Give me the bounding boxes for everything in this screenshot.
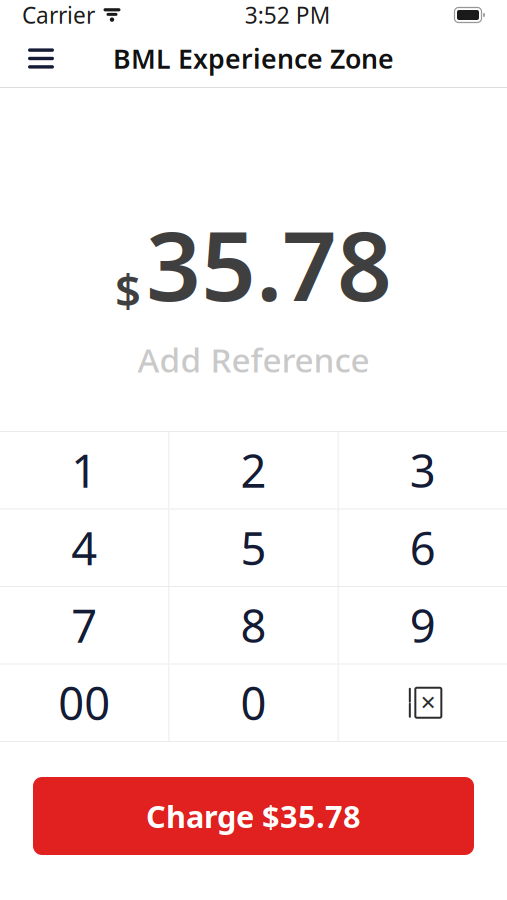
- staticText: 3: [410, 440, 436, 500]
- button[interactable]: 4: [0, 509, 168, 586]
- staticText: $: [115, 259, 141, 319]
- staticText: 8: [240, 595, 266, 655]
- button[interactable]: 7: [0, 587, 168, 663]
- button[interactable]: 8: [169, 587, 338, 663]
- staticText: 6: [410, 518, 436, 578]
- staticText: 35.78: [146, 200, 392, 327]
- staticText: 0: [240, 673, 266, 733]
- button[interactable]: Add Reference: [121, 333, 385, 386]
- staticText: 1: [71, 440, 97, 500]
- button[interactable]: 3: [339, 432, 507, 508]
- staticText: ✕: [420, 691, 437, 714]
- button[interactable]: 00: [0, 664, 168, 741]
- staticText: 9: [410, 595, 436, 655]
- button[interactable]: Delete: [339, 664, 507, 741]
- staticText: 2: [240, 440, 266, 500]
- staticText: 4: [71, 518, 97, 578]
- button[interactable]: 5: [169, 509, 338, 586]
- staticText: Carrier: [22, 0, 95, 30]
- staticText: 5: [240, 518, 266, 578]
- staticText: 3:52 PM: [245, 0, 331, 30]
- staticText: 7: [71, 595, 97, 655]
- staticText: Charge $35.78: [146, 796, 361, 836]
- button[interactable]: 1: [0, 432, 168, 508]
- button[interactable]: Menu: [14, 32, 68, 84]
- staticText: 00: [58, 673, 110, 733]
- staticText: Add Reference: [137, 337, 369, 382]
- button[interactable]: 9: [339, 587, 507, 663]
- button[interactable]: 6: [339, 509, 507, 586]
- staticText: BML Experience Zone: [113, 41, 394, 76]
- button[interactable]: 0: [169, 664, 338, 741]
- button[interactable]: 2: [169, 432, 338, 508]
- button[interactable]: Charge $35.78: [33, 777, 474, 855]
